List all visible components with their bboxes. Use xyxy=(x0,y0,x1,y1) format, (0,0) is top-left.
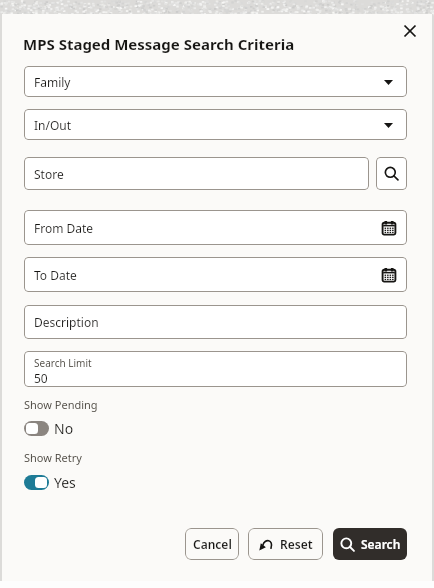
staticText: 50 xyxy=(34,370,48,386)
button[interactable] xyxy=(376,157,407,190)
button[interactable]: From Date xyxy=(24,210,407,245)
staticText: Show Retry xyxy=(24,450,82,465)
button[interactable] xyxy=(24,475,49,490)
staticText: Cancel xyxy=(193,536,232,552)
staticText: No xyxy=(54,419,74,438)
staticText: Description xyxy=(34,314,99,330)
button[interactable] xyxy=(24,421,49,436)
button[interactable]: Search Limit xyxy=(24,351,407,387)
button[interactable]: In/Out xyxy=(24,109,407,140)
button[interactable] xyxy=(404,25,416,37)
staticText: In/Out xyxy=(34,117,72,133)
staticText: Show Pending xyxy=(24,397,98,412)
staticText: Search xyxy=(361,536,401,552)
staticText: Reset xyxy=(280,536,313,552)
staticText: From Date xyxy=(34,220,94,236)
button[interactable]: Family xyxy=(24,66,407,97)
staticText: Yes xyxy=(54,473,76,492)
staticText: Search Limit xyxy=(34,356,92,370)
staticText: MPS Staged Message Search Criteria xyxy=(23,34,295,54)
staticText: Store xyxy=(34,166,64,182)
button[interactable]: Reset xyxy=(248,528,323,560)
button[interactable]: Cancel xyxy=(185,528,239,560)
button[interactable]: Description xyxy=(24,305,407,339)
button[interactable]: Search xyxy=(333,528,407,560)
staticText: To Date xyxy=(34,267,77,283)
button[interactable]: To Date xyxy=(24,257,407,292)
staticText: Family xyxy=(34,74,71,90)
button[interactable]: Store xyxy=(24,157,369,190)
